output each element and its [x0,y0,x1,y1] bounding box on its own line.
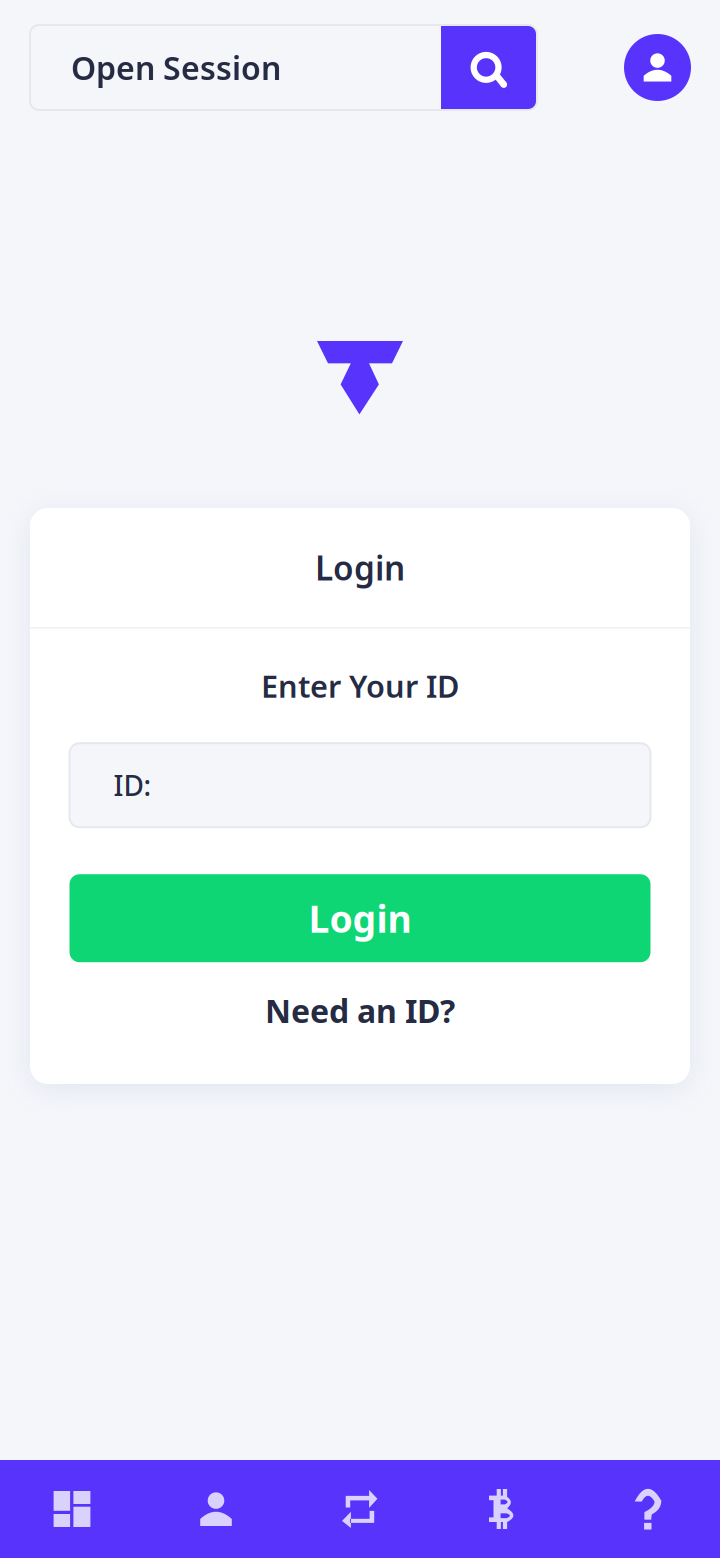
staticText: Need an ID? [265,989,455,1032]
staticText: Login [308,893,411,943]
button[interactable]: Dashboard [0,1460,144,1558]
staticText: ID: [113,767,151,804]
button[interactable]: Login [69,874,650,962]
button[interactable]: Bitcoin [432,1460,576,1558]
button[interactable]: Open Session [30,25,441,110]
button[interactable]: Need an ID? [241,981,479,1040]
button[interactable]: Profile [624,34,691,101]
button[interactable]: Help [576,1460,720,1558]
button[interactable]: ID: [69,743,650,827]
staticText: Enter Your ID [261,665,459,706]
button[interactable]: Search [441,25,537,110]
staticText: Login [315,545,405,590]
button[interactable]: Transfer [288,1460,432,1558]
staticText: Open Session [71,46,281,89]
button[interactable]: Account [144,1460,288,1558]
